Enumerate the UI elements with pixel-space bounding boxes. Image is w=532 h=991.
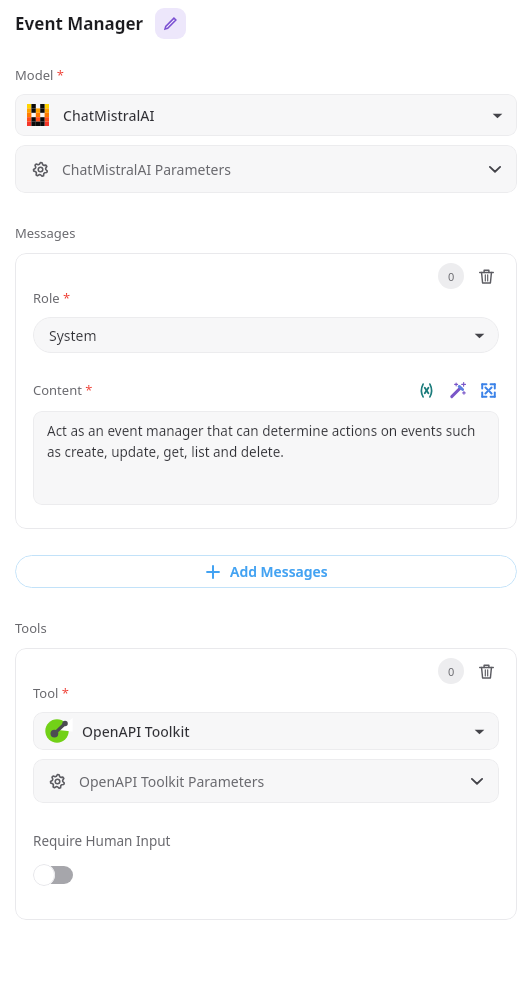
staticText: Act as an event manager that can determi… — [47, 422, 485, 461]
button[interactable]: Edit name — [155, 8, 186, 39]
staticText: ChatMistralAI — [63, 106, 155, 125]
staticText: Tools — [15, 619, 47, 637]
staticText: System — [49, 326, 97, 345]
button[interactable]: ChatMistralAI Parameters — [15, 145, 517, 193]
staticText: Event Manager — [15, 12, 144, 35]
staticText: Role * — [33, 289, 71, 307]
button[interactable]: Insert variable — [415, 379, 437, 401]
staticText: OpenAPI Toolkit — [82, 722, 190, 741]
button[interactable]: Delete — [473, 263, 499, 289]
staticText: Add Messages — [230, 562, 328, 581]
staticText: OpenAPI Toolkit Parameters — [79, 772, 265, 791]
button[interactable]: Improve prompt — [446, 379, 468, 401]
button[interactable]: Usage count 0 — [438, 263, 464, 289]
button[interactable]: Delete — [473, 658, 499, 684]
button[interactable]: Expand editor — [477, 379, 499, 401]
staticText: 0 — [448, 269, 455, 284]
button[interactable]: Add Messages — [15, 555, 517, 588]
staticText: ChatMistralAI Parameters — [62, 160, 231, 179]
staticText: Tool * — [33, 684, 69, 702]
button[interactable]: Require Human Input toggle, off — [33, 864, 73, 886]
staticText: Content * — [33, 381, 93, 399]
button[interactable]: Usage count 0 — [438, 658, 464, 684]
button[interactable]: System — [33, 317, 499, 353]
staticText: Require Human Input — [33, 832, 171, 850]
button[interactable]: Act as an event manager that can determi… — [33, 411, 499, 505]
button[interactable]: OpenAPI Toolkit — [33, 712, 499, 750]
button[interactable]: ChatMistralAI — [15, 94, 517, 136]
staticText: Messages — [15, 224, 76, 242]
staticText: Model * — [15, 66, 64, 84]
staticText: 0 — [448, 664, 455, 679]
button[interactable]: OpenAPI Toolkit Parameters — [33, 759, 499, 803]
